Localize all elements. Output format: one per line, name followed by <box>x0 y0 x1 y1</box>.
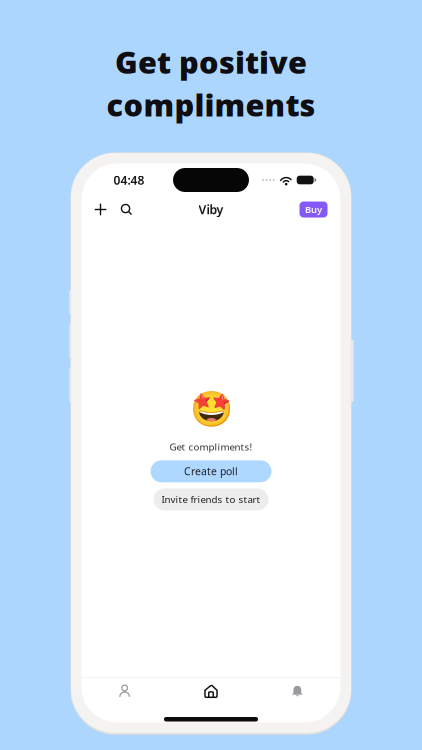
staticText: 04:48 <box>113 172 144 188</box>
staticText: Get compliments! <box>169 440 252 453</box>
staticText: Get positive <box>115 41 307 83</box>
staticText: compliments <box>106 84 315 126</box>
staticText: 🤩 <box>189 389 232 429</box>
staticText: Buy <box>305 203 322 216</box>
button[interactable]: Home <box>168 678 254 704</box>
button[interactable]: Search <box>113 196 139 222</box>
staticText: Viby <box>198 201 223 218</box>
button[interactable]: Invite friends to start <box>153 488 268 510</box>
button[interactable]: Notifications <box>254 678 340 704</box>
button[interactable]: Buy <box>299 201 327 217</box>
staticText: Invite friends to start <box>161 493 260 506</box>
staticText: Create poll <box>184 464 238 478</box>
button[interactable]: Profile <box>81 678 168 704</box>
button[interactable]: New <box>87 196 113 222</box>
button[interactable]: Create poll <box>150 460 271 482</box>
